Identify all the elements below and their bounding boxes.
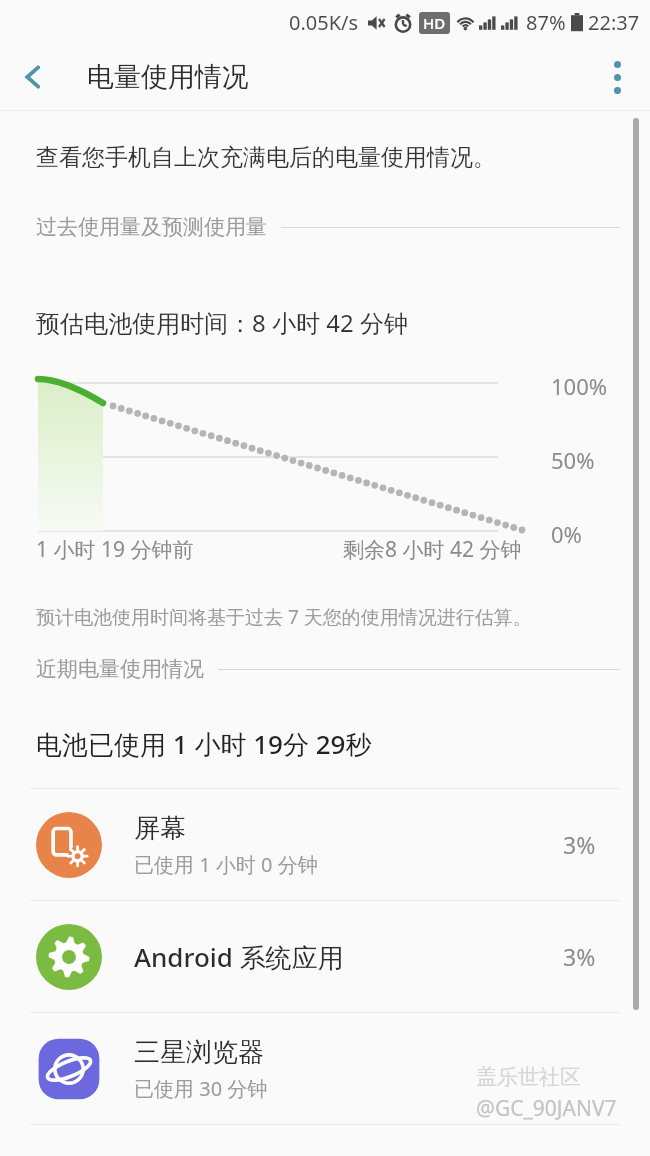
staticText: 50% bbox=[551, 445, 595, 475]
staticText: 预计电池使用时间将基于过去 7 天您的使用情况进行估算。 bbox=[36, 604, 532, 630]
staticText: @GC_90JANV7 bbox=[476, 1094, 617, 1123]
staticText: 3% bbox=[563, 829, 596, 860]
button[interactable]: 三星浏览器 bbox=[0, 1013, 650, 1124]
staticText: 剩余8 小时 42 分钟 bbox=[343, 535, 522, 564]
button[interactable]: 屏幕 bbox=[0, 789, 650, 900]
staticText: 电池已使用 1 小时 19分 29秒 bbox=[36, 726, 372, 762]
button[interactable]: Back bbox=[0, 44, 66, 110]
staticText: HD bbox=[423, 13, 446, 33]
staticText: 预估电池使用时间：8 小时 42 分钟 bbox=[36, 306, 408, 339]
staticText: 近期电量使用情况 bbox=[36, 656, 204, 682]
staticText: 已使用 30 分钟 bbox=[134, 1075, 268, 1102]
staticText: 过去使用量及预测使用量 bbox=[36, 214, 267, 240]
staticText: 100% bbox=[551, 371, 608, 401]
staticText: Android 系统应用 bbox=[134, 939, 344, 975]
staticText: 屏幕 bbox=[134, 812, 186, 845]
staticText: 87% bbox=[526, 9, 566, 36]
staticText: 电量使用情况 bbox=[87, 60, 249, 94]
staticText: 已使用 1 小时 0 分钟 bbox=[134, 851, 318, 878]
staticText: 三星浏览器 bbox=[134, 1036, 264, 1069]
staticText: 0.05K/s bbox=[289, 9, 359, 36]
staticText: 盖乐世社区 bbox=[476, 1064, 581, 1090]
button[interactable]: More options bbox=[584, 44, 650, 110]
staticText: 查看您手机自上次充满电后的电量使用情况。 bbox=[36, 143, 496, 172]
staticText: 3% bbox=[563, 941, 596, 972]
button[interactable]: Android 系统应用 bbox=[0, 901, 650, 1012]
staticText: 22:37 bbox=[588, 9, 640, 36]
staticText: 1 小时 19 分钟前 bbox=[36, 535, 194, 564]
staticText: 0% bbox=[551, 519, 582, 549]
